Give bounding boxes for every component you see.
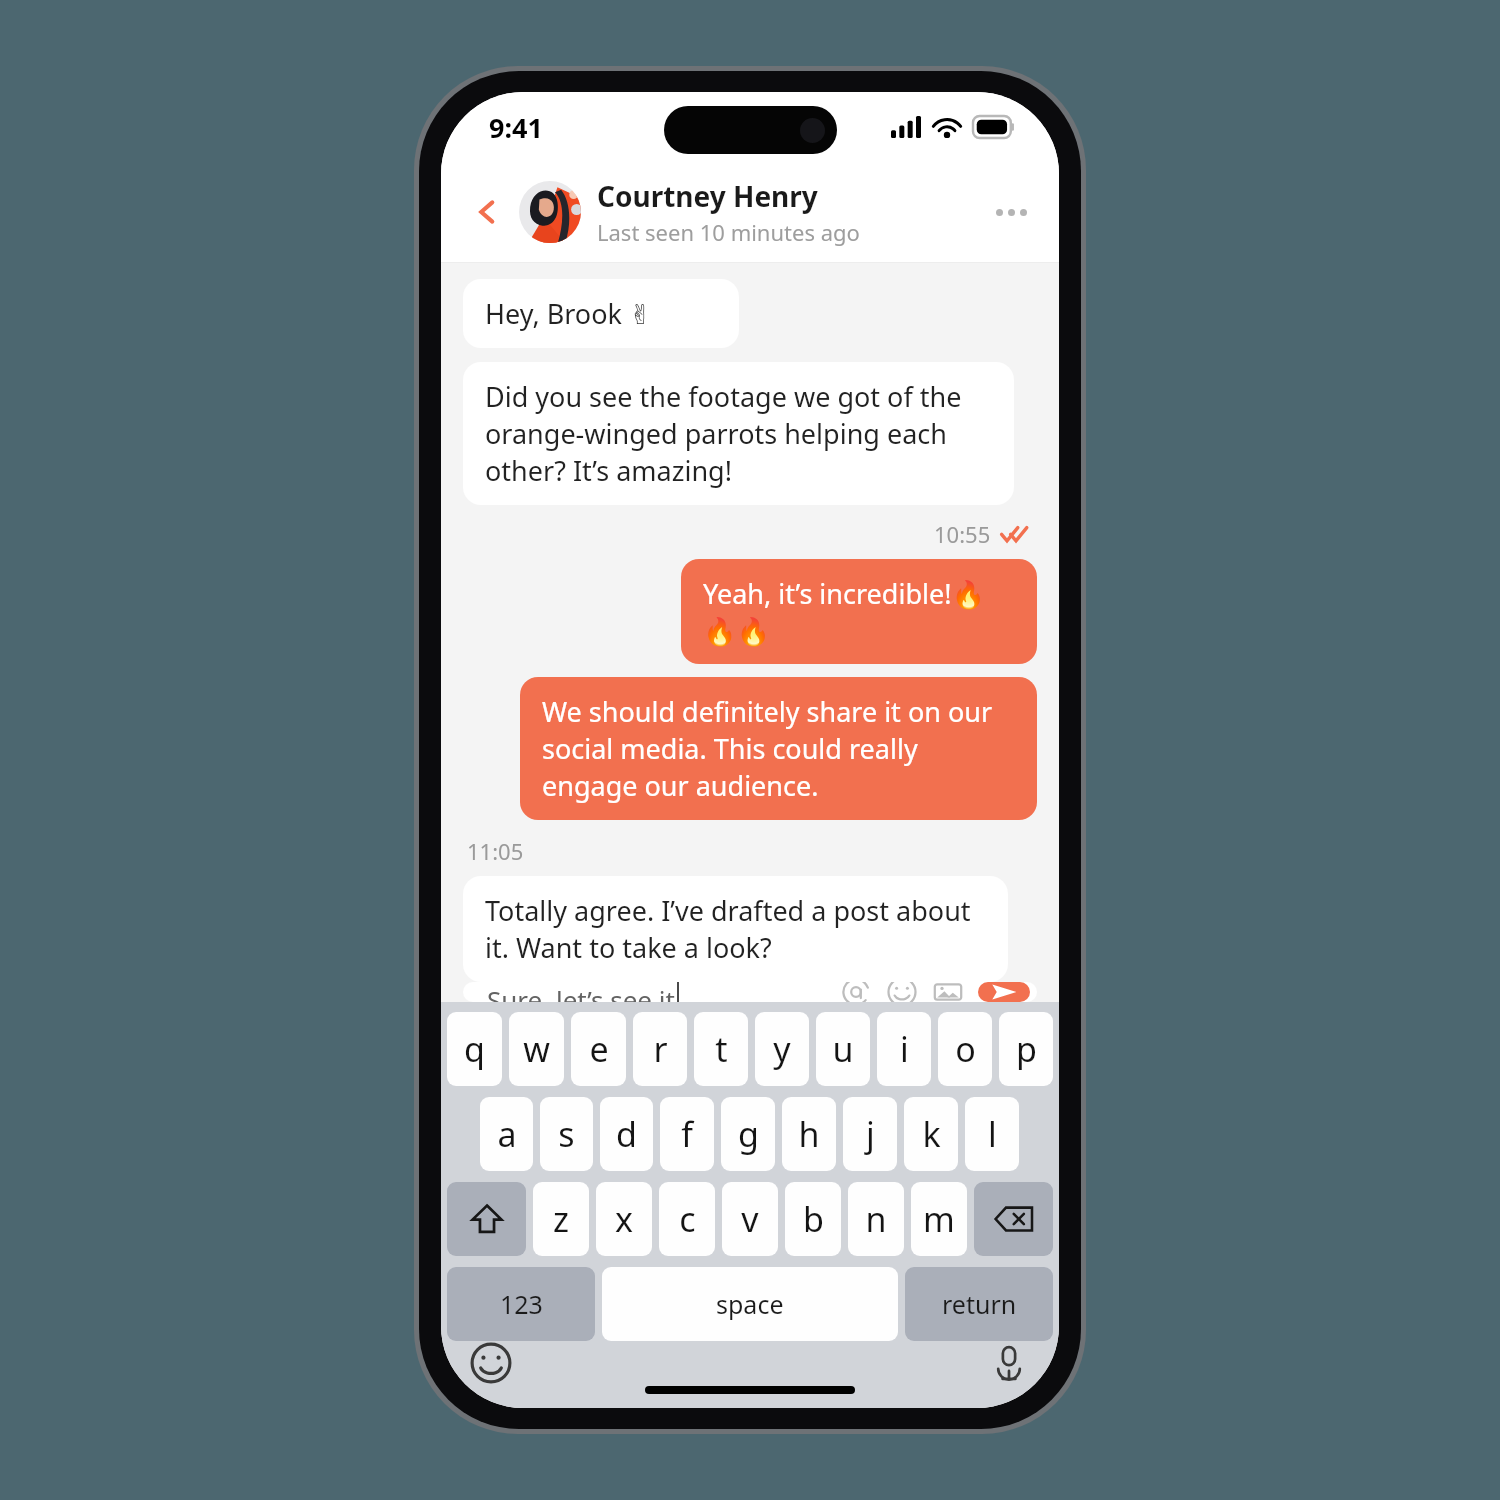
button[interactable]: d <box>600 1097 653 1171</box>
button[interactable]: h <box>782 1097 836 1171</box>
staticText: b <box>803 1196 824 1242</box>
button[interactable]: Hey, Brook ✌️ <box>463 279 739 348</box>
button[interactable]: z <box>533 1182 589 1256</box>
button[interactable]: f <box>660 1097 714 1171</box>
button[interactable]: q <box>447 1012 502 1086</box>
staticText: v <box>741 1196 759 1242</box>
button[interactable]: u <box>816 1012 870 1086</box>
button[interactable]: s <box>540 1097 593 1171</box>
staticText: Hey, Brook ✌️ <box>485 295 652 332</box>
button[interactable]: j <box>843 1097 897 1171</box>
button[interactable]: Did you see the footage we got of the or… <box>463 362 1014 505</box>
staticText: d <box>616 1111 637 1157</box>
button[interactable]: e <box>571 1012 626 1086</box>
button[interactable]: n <box>848 1182 904 1256</box>
staticText: y <box>773 1026 791 1072</box>
button[interactable]: Yeah, it’s incredible!🔥🔥🔥 <box>681 559 1037 664</box>
staticText: space <box>716 1287 784 1321</box>
button[interactable]: Back <box>461 186 513 238</box>
button[interactable]: a <box>480 1097 533 1171</box>
staticText: 10:55 <box>934 519 991 549</box>
staticText: m <box>923 1196 955 1242</box>
staticText: x <box>615 1196 633 1242</box>
button[interactable]: Courtney Henry <box>597 177 987 247</box>
staticText: Totally agree. I’ve drafted a post about… <box>485 892 986 966</box>
staticText: We should definitely share it on our soc… <box>542 693 1015 804</box>
staticText: c <box>679 1196 696 1242</box>
staticText: f <box>681 1111 693 1157</box>
staticText: s <box>558 1111 575 1157</box>
staticText: o <box>955 1026 976 1072</box>
button[interactable]: We should definitely share it on our soc… <box>520 677 1037 820</box>
staticText: r <box>653 1026 668 1072</box>
button[interactable]: More options <box>987 188 1035 236</box>
staticText: u <box>832 1026 854 1072</box>
staticText: n <box>865 1196 887 1242</box>
button[interactable]: w <box>509 1012 564 1086</box>
staticText: 123 <box>500 1287 543 1321</box>
button[interactable]: r <box>633 1012 687 1086</box>
staticText: Yeah, it’s incredible!🔥🔥🔥 <box>703 575 1015 648</box>
button[interactable]: t <box>694 1012 748 1086</box>
staticText: z <box>553 1196 569 1242</box>
button[interactable]: m <box>911 1182 967 1256</box>
button[interactable]: v <box>722 1182 778 1256</box>
staticText: a <box>497 1111 517 1157</box>
button[interactable]: space <box>602 1267 898 1341</box>
button[interactable]: g <box>721 1097 775 1171</box>
button[interactable]: Mention <box>836 982 876 1002</box>
staticText: t <box>715 1026 728 1072</box>
button[interactable]: x <box>596 1182 652 1256</box>
button[interactable]: i <box>877 1012 931 1086</box>
button[interactable]: return <box>905 1267 1053 1341</box>
staticText: k <box>922 1111 941 1157</box>
staticText: j <box>866 1111 875 1157</box>
staticText: e <box>589 1026 609 1072</box>
staticText: 11:05 <box>467 836 524 866</box>
staticText: return <box>942 1287 1017 1321</box>
staticText: g <box>738 1111 759 1157</box>
button[interactable]: Emoji <box>882 982 922 1002</box>
button[interactable]: c <box>659 1182 715 1256</box>
staticText: 9:41 <box>489 109 543 146</box>
staticText: w <box>523 1026 550 1072</box>
staticText: h <box>798 1111 820 1157</box>
button[interactable]: Attach image <box>928 982 968 1002</box>
button[interactable]: k <box>904 1097 958 1171</box>
button[interactable]: p <box>999 1012 1053 1086</box>
button[interactable]: Sure, let’s see it <box>487 982 836 1002</box>
staticText: l <box>988 1111 997 1157</box>
staticText: q <box>464 1026 485 1072</box>
staticText: Did you see the footage we got of the or… <box>485 378 992 489</box>
button[interactable]: o <box>938 1012 992 1086</box>
button[interactable]: y <box>755 1012 809 1086</box>
button[interactable]: Dictation <box>983 1337 1035 1389</box>
button[interactable]: Shift <box>447 1182 526 1256</box>
button[interactable]: Send <box>978 982 1030 1002</box>
button[interactable]: b <box>785 1182 841 1256</box>
button[interactable]: l <box>965 1097 1019 1171</box>
staticText: i <box>900 1026 909 1072</box>
staticText: Last seen 10 minutes ago <box>597 217 860 247</box>
staticText: Sure, let’s see it <box>487 982 675 1002</box>
button[interactable]: Backspace <box>974 1182 1053 1256</box>
button[interactable]: Emoji keyboard <box>465 1337 517 1389</box>
staticText: p <box>1016 1026 1037 1072</box>
staticText: Courtney Henry <box>597 177 818 215</box>
button[interactable]: 123 <box>447 1267 595 1341</box>
button[interactable]: Totally agree. I’ve drafted a post about… <box>463 876 1008 982</box>
